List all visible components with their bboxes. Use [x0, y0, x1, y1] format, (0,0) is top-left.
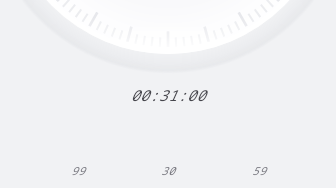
- staticText: 00:31:00: [130, 85, 206, 105]
- other: Timer dial: [0, 0, 336, 188]
- button[interactable]: 99: [64, 160, 92, 180]
- button[interactable]: 59: [245, 160, 273, 180]
- staticText: 59: [252, 163, 266, 178]
- button[interactable]: 30: [154, 160, 182, 180]
- staticText: 99: [71, 163, 85, 178]
- button[interactable]: 00:31:00: [120, 84, 216, 106]
- staticText: 30: [161, 163, 175, 178]
